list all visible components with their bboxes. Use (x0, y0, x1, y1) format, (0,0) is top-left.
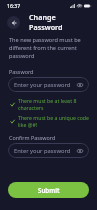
button[interactable]: Enter your password (8, 143, 89, 158)
staticText: Password (9, 68, 34, 75)
button[interactable]: Submit (8, 182, 89, 198)
staticText: Enter your password (14, 147, 76, 155)
staticText: Submit (38, 186, 60, 194)
staticText: Change Password (29, 12, 90, 32)
button[interactable]: Back (7, 16, 20, 29)
staticText: The new password must be different from … (9, 36, 88, 60)
staticText: There must be a unique code like @#! (18, 114, 89, 128)
staticText: Confirm Password (9, 134, 56, 141)
button[interactable]: Toggle password visibility (76, 81, 83, 88)
staticText: 16:37 (7, 2, 21, 9)
button[interactable]: Enter your password (8, 77, 89, 92)
staticText: There must be at least 8 characters (18, 97, 89, 111)
button[interactable]: Toggle password visibility (76, 147, 83, 154)
staticText: Enter your password (14, 81, 76, 89)
